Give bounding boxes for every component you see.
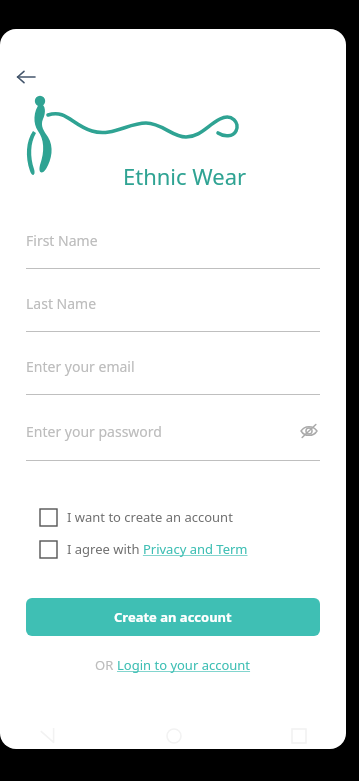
staticText: Enter your password	[26, 422, 298, 441]
staticText: Last Name	[26, 294, 320, 313]
button[interactable]: I agree with Privacy and Term	[40, 540, 306, 558]
staticText: First Name	[26, 231, 320, 250]
button[interactable]: Enter your password	[26, 420, 320, 486]
button[interactable]: Login to your account	[117, 656, 251, 674]
button[interactable]: First Name	[26, 231, 320, 294]
staticText: I want to create an account	[67, 508, 233, 526]
button[interactable]: Show password	[298, 420, 320, 442]
button[interactable]: Last Name	[26, 294, 320, 357]
staticText: Login to your account	[117, 656, 251, 674]
staticText: I agree with Privacy and Term	[67, 540, 248, 558]
button[interactable]: I want to create an account	[40, 508, 306, 526]
button[interactable]: Create an account	[26, 598, 320, 636]
staticText: Create an account	[114, 608, 232, 626]
staticText: OR	[95, 656, 117, 674]
button[interactable]: Back	[10, 61, 42, 93]
staticText: Ethnic Wear	[123, 161, 247, 191]
staticText: Enter your email	[26, 357, 320, 376]
button[interactable]: Enter your email	[26, 357, 320, 420]
